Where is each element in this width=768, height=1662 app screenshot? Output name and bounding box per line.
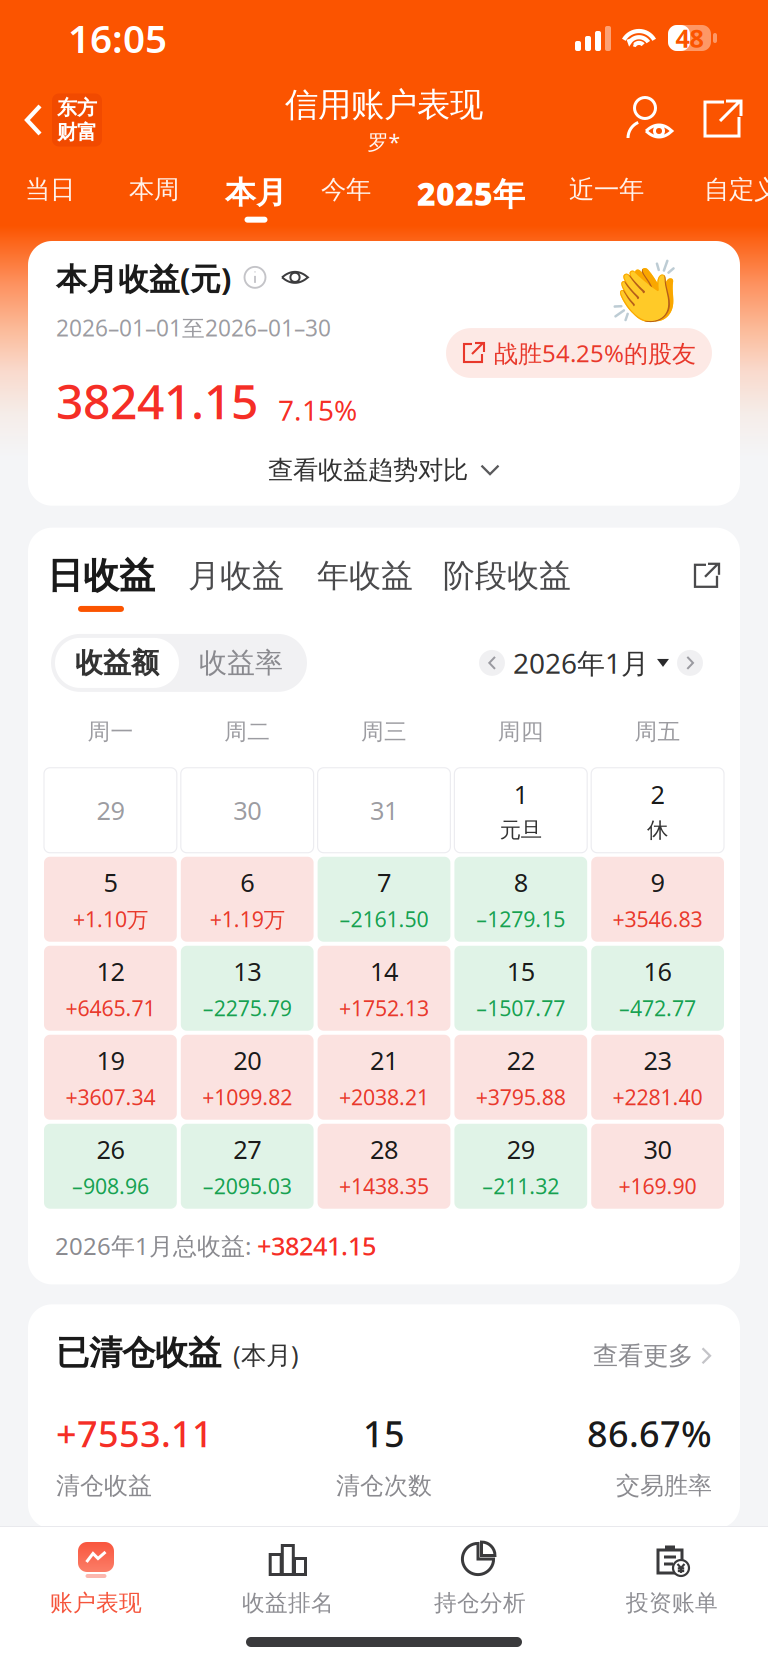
staticText: 周五 bbox=[635, 718, 681, 746]
button[interactable]: 19 bbox=[44, 1035, 177, 1120]
staticText: 16:05 bbox=[68, 12, 167, 64]
button[interactable]: 28 bbox=[318, 1124, 450, 1209]
staticText: –2095.03 bbox=[203, 1172, 292, 1200]
staticText: 27 bbox=[233, 1132, 261, 1166]
button[interactable]: 收益额 bbox=[55, 638, 179, 688]
staticText: 2026年1月总收益: bbox=[55, 1230, 257, 1261]
button[interactable]: 26 bbox=[44, 1124, 177, 1209]
button[interactable]: 21 bbox=[318, 1035, 450, 1120]
staticText: 收益率 bbox=[199, 646, 283, 680]
button[interactable]: 收益率 bbox=[179, 638, 303, 688]
button[interactable]: 自定义 bbox=[704, 164, 768, 222]
button[interactable]: 23 bbox=[591, 1035, 724, 1120]
button[interactable]: 返回 东方财富 bbox=[0, 83, 116, 156]
staticText: 2025年 bbox=[417, 172, 525, 214]
staticText: 已清仓收益 bbox=[56, 1332, 221, 1373]
button[interactable]: 30 bbox=[591, 1124, 724, 1209]
button[interactable]: 2026年1月 bbox=[513, 636, 669, 689]
staticText: +1438.35 bbox=[339, 1172, 429, 1200]
button[interactable]: 今年 bbox=[321, 164, 371, 222]
staticText: 阶段收益 bbox=[443, 556, 571, 595]
button[interactable]: 持仓分析 bbox=[384, 1541, 576, 1617]
button[interactable]: 30 bbox=[181, 768, 314, 853]
staticText: 当日 bbox=[25, 174, 75, 205]
staticText: 日收益 bbox=[47, 554, 155, 598]
button[interactable]: 日收益 bbox=[47, 554, 155, 612]
staticText: 罗* bbox=[367, 127, 400, 156]
staticText: +3546.83 bbox=[613, 905, 703, 933]
button[interactable]: 战胜54.25%的股友 bbox=[446, 328, 712, 378]
staticText: 今年 bbox=[321, 174, 371, 205]
staticText: 月收益 bbox=[188, 556, 284, 595]
staticText: 13 bbox=[233, 954, 261, 988]
button[interactable]: 9 bbox=[591, 857, 724, 942]
button[interactable]: 29 bbox=[454, 1124, 587, 1209]
button[interactable]: 分享 bbox=[690, 89, 756, 151]
staticText: +169.90 bbox=[619, 1172, 697, 1200]
button[interactable]: 查看收益趋势对比 bbox=[56, 455, 712, 486]
button[interactable]: 5 bbox=[44, 857, 177, 942]
button[interactable]: 20 bbox=[181, 1035, 314, 1120]
button[interactable]: 22 bbox=[454, 1035, 587, 1120]
staticText: 23 bbox=[644, 1043, 672, 1077]
staticText: 26 bbox=[96, 1132, 124, 1166]
staticText: 15 bbox=[507, 954, 535, 988]
button[interactable]: 下一月 bbox=[669, 642, 711, 684]
button[interactable]: 当日 bbox=[25, 164, 75, 222]
button[interactable]: 27 bbox=[181, 1124, 314, 1209]
button[interactable]: 年收益 bbox=[317, 556, 413, 609]
staticText: –908.96 bbox=[72, 1172, 149, 1200]
staticText: –2275.79 bbox=[203, 994, 292, 1022]
button[interactable]: 12 bbox=[44, 946, 177, 1031]
staticText: +2281.40 bbox=[613, 1083, 703, 1111]
staticText: 20 bbox=[233, 1043, 261, 1077]
button[interactable]: 6 bbox=[181, 857, 314, 942]
button[interactable]: 上一月 bbox=[471, 642, 513, 684]
button[interactable]: 15 bbox=[454, 946, 587, 1031]
staticText: 周三 bbox=[361, 718, 407, 746]
staticText: 19 bbox=[96, 1043, 124, 1077]
button[interactable]: 阶段收益 bbox=[443, 556, 571, 609]
button[interactable]: 16 bbox=[591, 946, 724, 1031]
staticText: 财富 bbox=[57, 120, 97, 145]
button[interactable]: 分享 bbox=[693, 562, 721, 604]
staticText: 年收益 bbox=[317, 556, 413, 595]
button[interactable]: 2025年 bbox=[417, 164, 525, 222]
staticText: 交易胜率 bbox=[616, 1471, 712, 1501]
staticText: 本月收益(元) bbox=[56, 258, 231, 299]
staticText: 7.15% bbox=[278, 391, 357, 429]
staticText: 28 bbox=[370, 1132, 398, 1166]
staticText: 元旦 bbox=[500, 817, 542, 843]
button[interactable]: 月收益 bbox=[188, 556, 284, 609]
staticText: –1279.15 bbox=[476, 905, 565, 933]
button[interactable]: 29 bbox=[44, 768, 177, 853]
staticText: 21 bbox=[370, 1043, 398, 1077]
button[interactable]: 近一年 bbox=[569, 164, 644, 222]
button[interactable]: 31 bbox=[318, 768, 450, 853]
button[interactable]: 7 bbox=[318, 857, 450, 942]
button[interactable]: 客户信息 bbox=[614, 86, 687, 154]
staticText: 信用账户表现 bbox=[285, 84, 483, 125]
button[interactable]: 8 bbox=[454, 857, 587, 942]
button[interactable]: 查看更多 bbox=[593, 1340, 712, 1373]
staticText: +2038.21 bbox=[339, 1083, 429, 1111]
button[interactable]: 本周 bbox=[129, 164, 179, 222]
staticText: 6 bbox=[240, 865, 254, 899]
staticText: 东方 bbox=[57, 95, 97, 120]
staticText: +7553.11 bbox=[56, 1409, 213, 1457]
staticText: 16 bbox=[644, 954, 672, 988]
button[interactable]: 14 bbox=[318, 946, 450, 1031]
button[interactable]: 投资账单 bbox=[576, 1541, 768, 1617]
button[interactable]: 13 bbox=[181, 946, 314, 1031]
staticText: +38241.15 bbox=[257, 1229, 376, 1262]
staticText: 12 bbox=[96, 954, 124, 988]
staticText: 8 bbox=[514, 865, 528, 899]
button[interactable]: 账户表现 bbox=[0, 1541, 192, 1617]
button[interactable]: 2 bbox=[591, 768, 724, 853]
button[interactable]: 收益排名 bbox=[192, 1541, 384, 1617]
button[interactable]: 本月 bbox=[225, 164, 287, 222]
staticText: 周一 bbox=[87, 718, 133, 746]
staticText: 周四 bbox=[498, 718, 544, 746]
button[interactable]: 1 bbox=[454, 768, 587, 853]
staticText: 近一年 bbox=[569, 174, 644, 205]
